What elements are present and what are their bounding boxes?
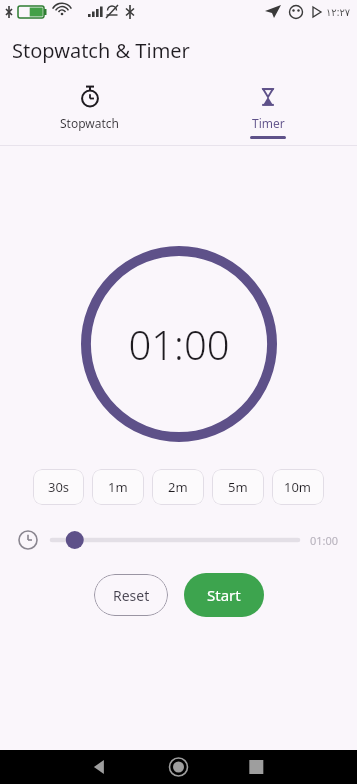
button[interactable]: Start <box>184 573 264 617</box>
staticText: 30s <box>48 478 70 496</box>
other: Duration <box>18 530 38 550</box>
staticText: 10m <box>284 478 312 496</box>
button[interactable]: 30s <box>33 469 84 505</box>
button[interactable]: Reset <box>94 574 168 616</box>
staticText: Timer <box>252 115 285 131</box>
staticText: 5m <box>228 478 248 496</box>
staticText: 01:00 <box>310 533 339 548</box>
staticText: Stopwatch <box>60 115 119 131</box>
button[interactable]: Stopwatch <box>0 76 178 145</box>
button[interactable]: Timer <box>178 76 357 145</box>
staticText: 2m <box>168 478 188 496</box>
staticText: ١٢:٢٧ <box>326 5 351 19</box>
button[interactable] <box>50 526 300 554</box>
staticText: 01:00 <box>128 317 230 371</box>
button[interactable]: 1m <box>92 469 144 505</box>
button[interactable]: 10m <box>272 469 324 505</box>
staticText: 1m <box>108 478 128 496</box>
button[interactable]: 5m <box>212 469 264 505</box>
staticText: Reset <box>113 586 150 605</box>
button[interactable]: 2m <box>152 469 204 505</box>
staticText: Start <box>207 585 241 605</box>
staticText: Stopwatch & Timer <box>12 37 190 64</box>
